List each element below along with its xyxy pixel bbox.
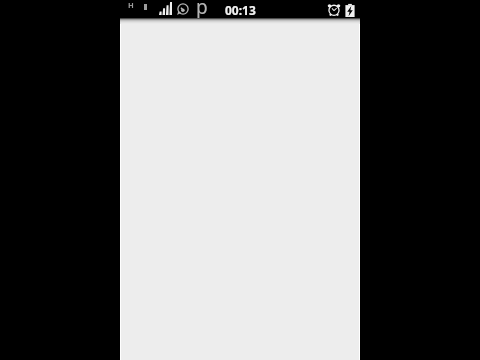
staticText: 00:13 xyxy=(225,2,256,18)
other: WhatsApp notification xyxy=(177,3,189,15)
other: Mobile signal strength xyxy=(159,2,172,15)
staticText: p xyxy=(196,0,208,20)
other: Battery charging xyxy=(345,3,355,17)
button[interactable] xyxy=(120,18,360,360)
other: Alarm set xyxy=(328,3,340,16)
staticText: H xyxy=(128,0,134,10)
